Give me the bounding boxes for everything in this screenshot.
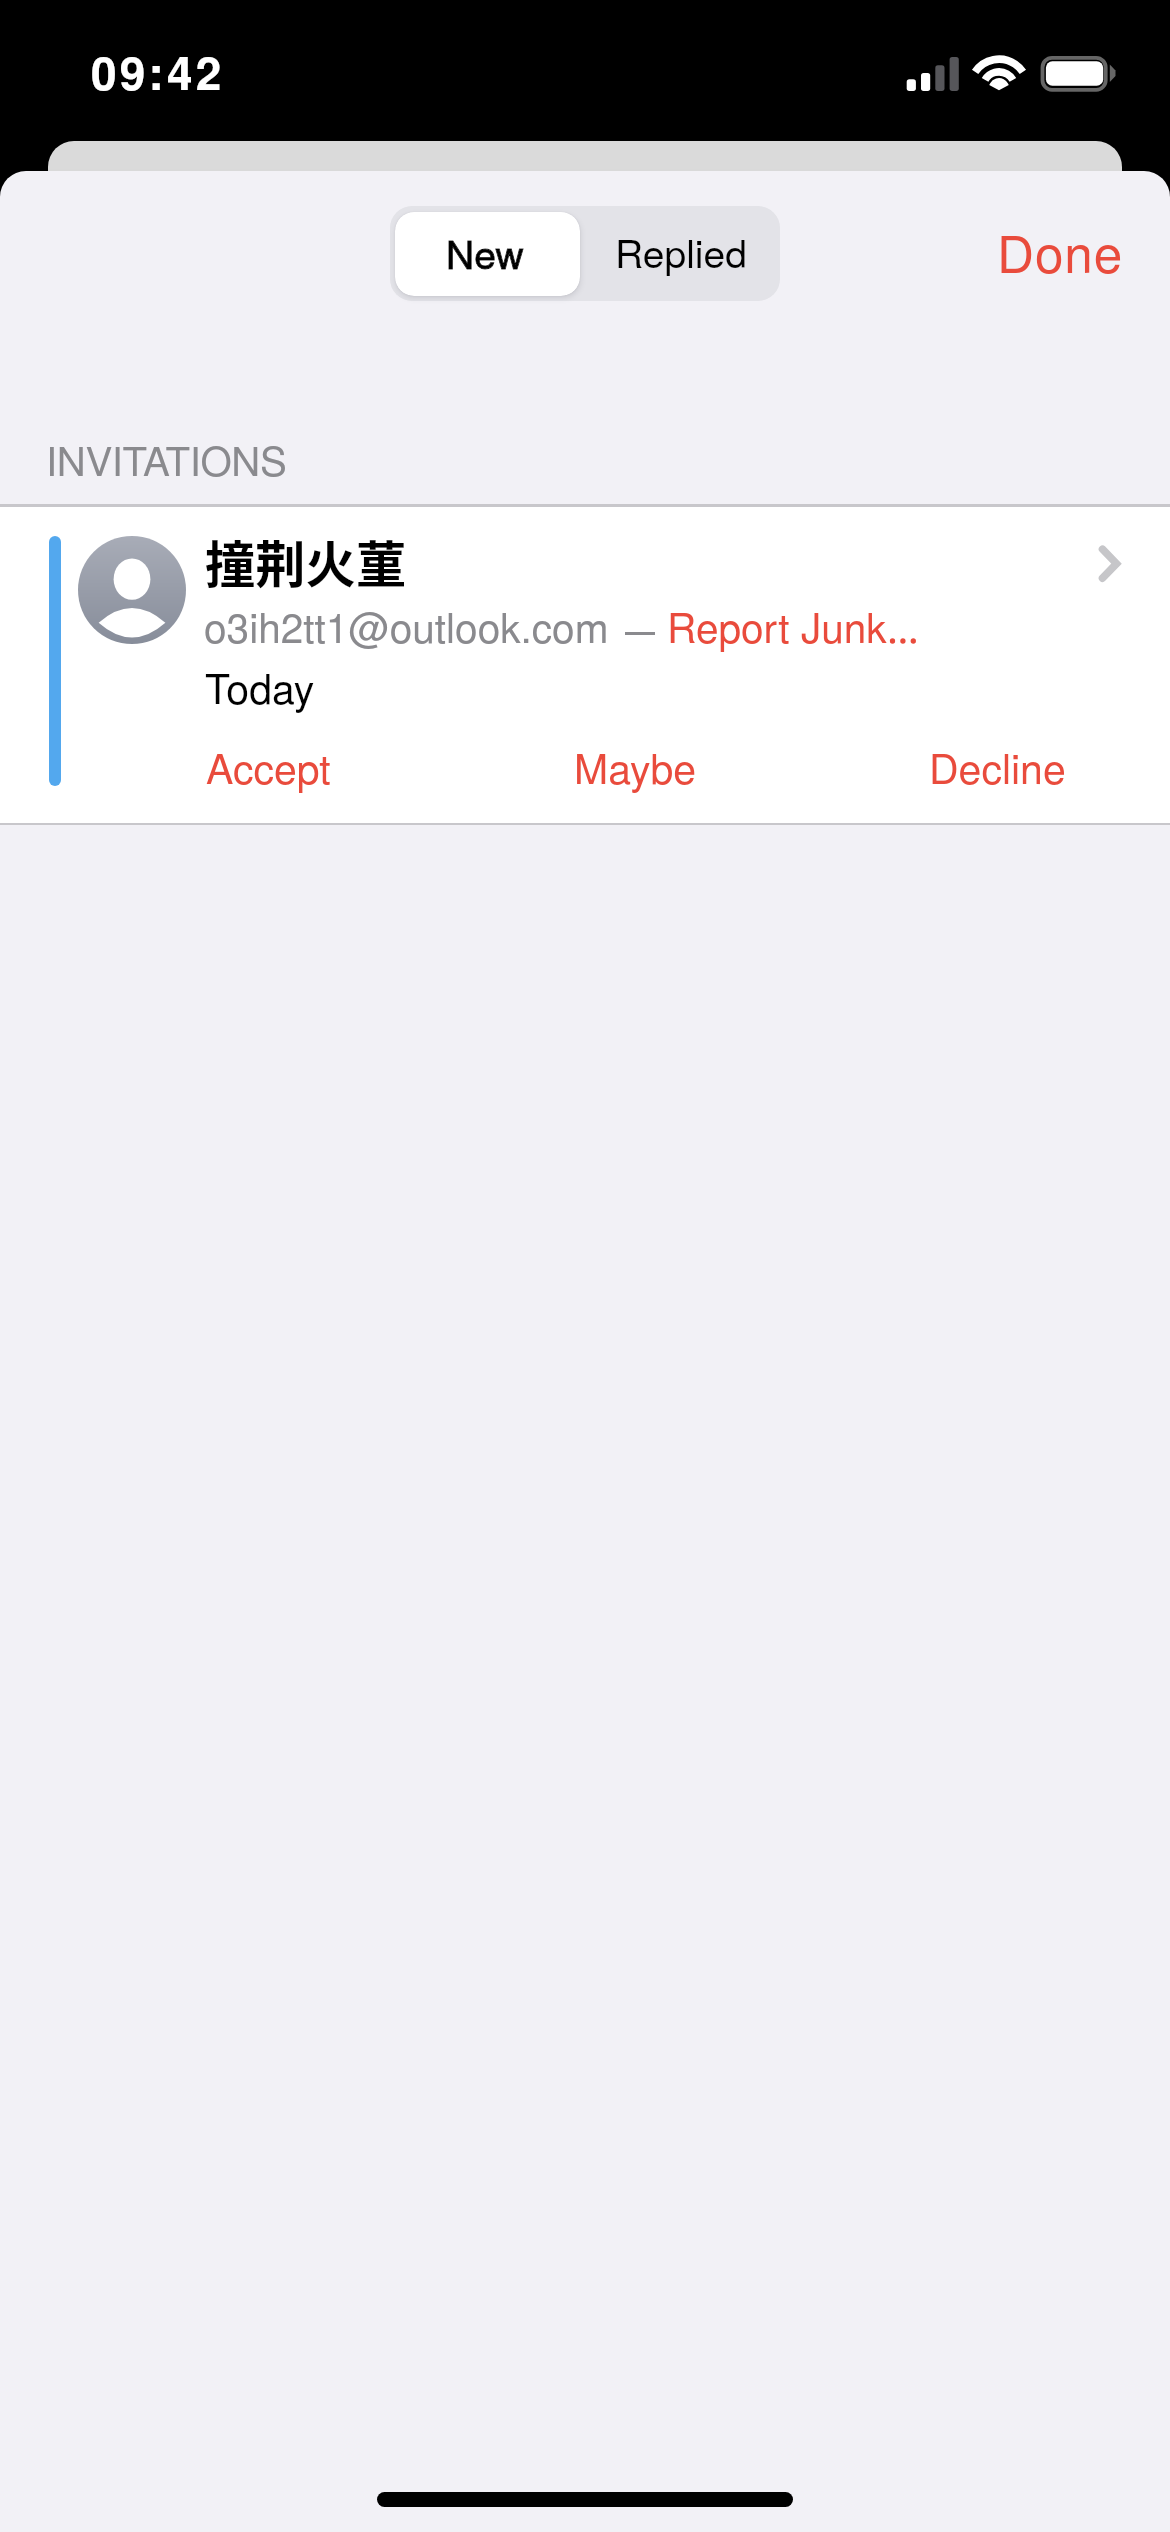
staticText: Accept: [206, 737, 331, 796]
other: Open invitation: [1090, 540, 1130, 588]
staticText: Replied: [615, 223, 747, 279]
staticText: 撞荆火菫: [205, 525, 407, 598]
button[interactable]: New: [395, 212, 580, 296]
staticText: New: [446, 224, 524, 280]
staticText: Report Junk: [667, 596, 887, 654]
staticText: New: [446, 224, 524, 280]
button[interactable]: Maybe: [542, 702, 712, 794]
button[interactable]: Accept: [171, 702, 341, 794]
staticText: INVITATIONS: [46, 430, 287, 488]
staticText: Maybe: [574, 737, 697, 796]
staticText: Today: [205, 657, 315, 716]
button[interactable]: Replied: [585, 206, 780, 301]
staticText: o3ih2tt1@outlook.com: [204, 596, 609, 654]
button[interactable]: Done: [986, 201, 1136, 306]
staticText: Done: [997, 214, 1124, 287]
button[interactable]: 撞荆火菫: [0, 507, 1170, 823]
staticText: 09:42: [91, 38, 225, 104]
button[interactable]: Decline: [897, 702, 1067, 794]
staticText: Decline: [929, 737, 1066, 796]
